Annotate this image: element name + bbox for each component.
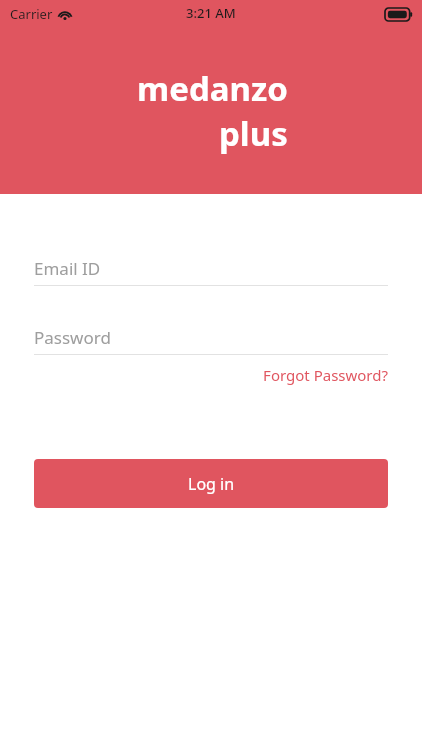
staticText: medanzo	[137, 66, 288, 111]
staticText: Forgot Password?	[263, 365, 388, 385]
staticText: 3:21 AM	[186, 4, 236, 22]
staticText: Log in	[188, 473, 235, 495]
button[interactable]: Email ID	[34, 255, 388, 286]
staticText: Carrier	[10, 5, 53, 23]
button[interactable]: Log in	[34, 459, 388, 508]
button[interactable]: Forgot Password?	[263, 363, 388, 387]
staticText: Email ID	[34, 257, 101, 280]
button[interactable]: Password	[34, 324, 388, 355]
staticText: Password	[34, 326, 111, 349]
staticText: plus	[219, 111, 288, 156]
